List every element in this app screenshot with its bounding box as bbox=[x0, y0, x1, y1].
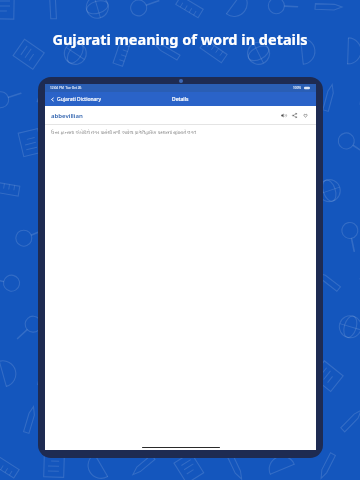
other: Back bbox=[50, 97, 55, 102]
staticText: 100% bbox=[293, 86, 302, 90]
button[interactable]: Pronounce bbox=[279, 111, 288, 120]
staticText: 12:04 PM Tue Oct 26 bbox=[50, 86, 82, 90]
staticText: Details bbox=[172, 96, 189, 103]
staticText: ઉત્તર ફ્રાન્સના એબેવિલે નગર પાસેથી મળી આ… bbox=[51, 130, 197, 136]
button[interactable]: Share bbox=[290, 111, 299, 120]
staticText: Gujarati Dictionary bbox=[57, 96, 101, 103]
staticText: Gujarati meaning of word in details bbox=[52, 29, 308, 49]
button[interactable]: Favorite bbox=[301, 111, 310, 120]
button[interactable]: Back bbox=[50, 96, 101, 103]
staticText: abbevillian bbox=[51, 112, 83, 120]
